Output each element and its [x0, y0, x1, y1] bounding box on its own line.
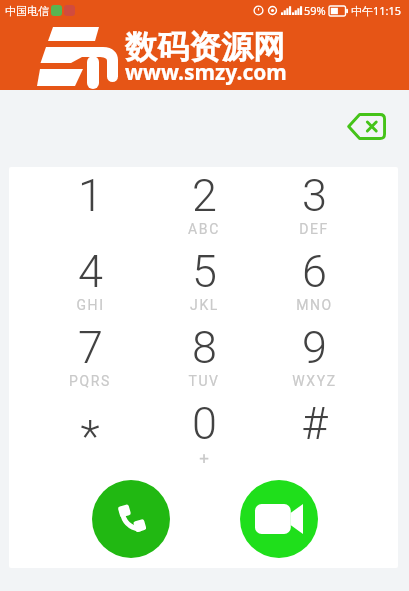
- staticText: 中国电信: [5, 4, 49, 18]
- button[interactable]: 2: [149, 169, 259, 245]
- staticText: 5: [192, 245, 217, 297]
- button[interactable]: 6: [259, 245, 369, 321]
- staticText: WXYZ: [292, 373, 337, 389]
- staticText: JKL: [190, 297, 219, 313]
- button[interactable]: *: [35, 397, 145, 473]
- staticText: 中午11:15: [351, 3, 402, 18]
- staticText: 6: [302, 245, 327, 297]
- staticText: +: [199, 448, 209, 466]
- staticText: PQRS: [69, 373, 111, 389]
- staticText: www.smzy.com: [125, 58, 287, 87]
- button[interactable]: 9: [259, 321, 369, 397]
- button[interactable]: Video call: [240, 480, 318, 558]
- staticText: 7: [78, 321, 103, 373]
- button[interactable]: Call: [92, 480, 170, 558]
- button[interactable]: 0: [149, 397, 259, 473]
- staticText: DEF: [299, 221, 329, 237]
- staticText: 4: [78, 245, 103, 297]
- button[interactable]: 8: [149, 321, 259, 397]
- staticText: 0: [192, 397, 217, 449]
- staticText: 数码资源网: [125, 27, 285, 67]
- staticText: 3: [302, 169, 327, 221]
- staticText: 2: [192, 169, 217, 221]
- button[interactable]: 3: [259, 169, 369, 245]
- button[interactable]: 5: [149, 245, 259, 321]
- button[interactable]: Delete: [341, 104, 391, 148]
- staticText: 1: [78, 169, 103, 221]
- staticText: #: [301, 397, 328, 449]
- button[interactable]: 4: [35, 245, 145, 321]
- staticText: ABC: [188, 221, 220, 237]
- staticText: 8: [192, 321, 217, 373]
- staticText: MNO: [296, 297, 333, 313]
- staticText: *: [80, 410, 100, 462]
- button[interactable]: 7: [35, 321, 145, 397]
- button[interactable]: #: [259, 397, 369, 473]
- button[interactable]: 1: [35, 169, 145, 245]
- staticText: 59%: [304, 3, 326, 18]
- staticText: 9: [302, 321, 327, 373]
- staticText: GHI: [76, 297, 105, 313]
- staticText: TUV: [188, 373, 220, 389]
